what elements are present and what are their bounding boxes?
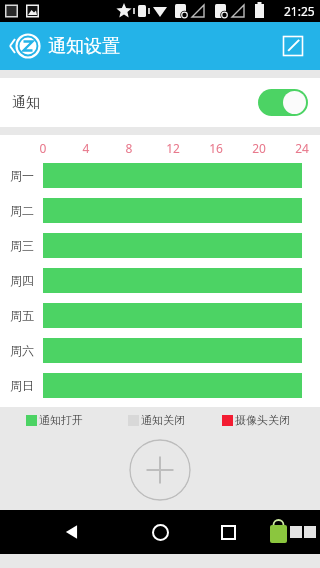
staticText: 周二	[10, 203, 34, 218]
staticText: 12	[161, 140, 185, 156]
button[interactable]: 周一	[0, 158, 320, 193]
button[interactable]: 摄像头关闭	[222, 413, 290, 427]
staticText: 摄像头关闭	[235, 413, 290, 427]
button[interactable]: Notification switch	[258, 89, 308, 116]
staticText: 通知打开	[39, 413, 83, 427]
staticText: 通知	[12, 94, 40, 112]
staticText: 周六	[10, 343, 34, 358]
staticText: 通知关闭	[141, 413, 185, 427]
button[interactable]: 周三	[0, 228, 320, 263]
button[interactable]: 通知打开	[26, 413, 83, 427]
button[interactable]: 通知设置	[0, 25, 126, 67]
staticText: 周三	[10, 238, 34, 253]
staticText: 通知设置	[48, 35, 120, 58]
button[interactable]: 周五	[0, 298, 320, 333]
staticText: 24	[290, 140, 314, 156]
button[interactable]: 通知关闭	[128, 413, 185, 427]
button[interactable]: 通知	[0, 78, 320, 127]
button[interactable]: Home	[140, 512, 180, 552]
button[interactable]: 周二	[0, 193, 320, 228]
staticText: 周日	[10, 378, 34, 393]
button[interactable]: Edit	[276, 29, 310, 63]
button[interactable]: Add	[129, 439, 191, 501]
button[interactable]: Back	[52, 512, 92, 552]
staticText: 20	[247, 140, 271, 156]
staticText: 0	[31, 140, 55, 156]
button[interactable]: 周日	[0, 368, 320, 403]
staticText: 21:25	[284, 3, 315, 19]
staticText: 周一	[10, 168, 34, 183]
staticText: 周五	[10, 308, 34, 323]
button[interactable]: 周六	[0, 333, 320, 368]
button[interactable]: 周四	[0, 263, 320, 298]
button[interactable]: Recents	[208, 512, 248, 552]
staticText: 周四	[10, 273, 34, 288]
staticText: 16	[204, 140, 228, 156]
staticText: 4	[74, 140, 98, 156]
staticText: 8	[117, 140, 141, 156]
